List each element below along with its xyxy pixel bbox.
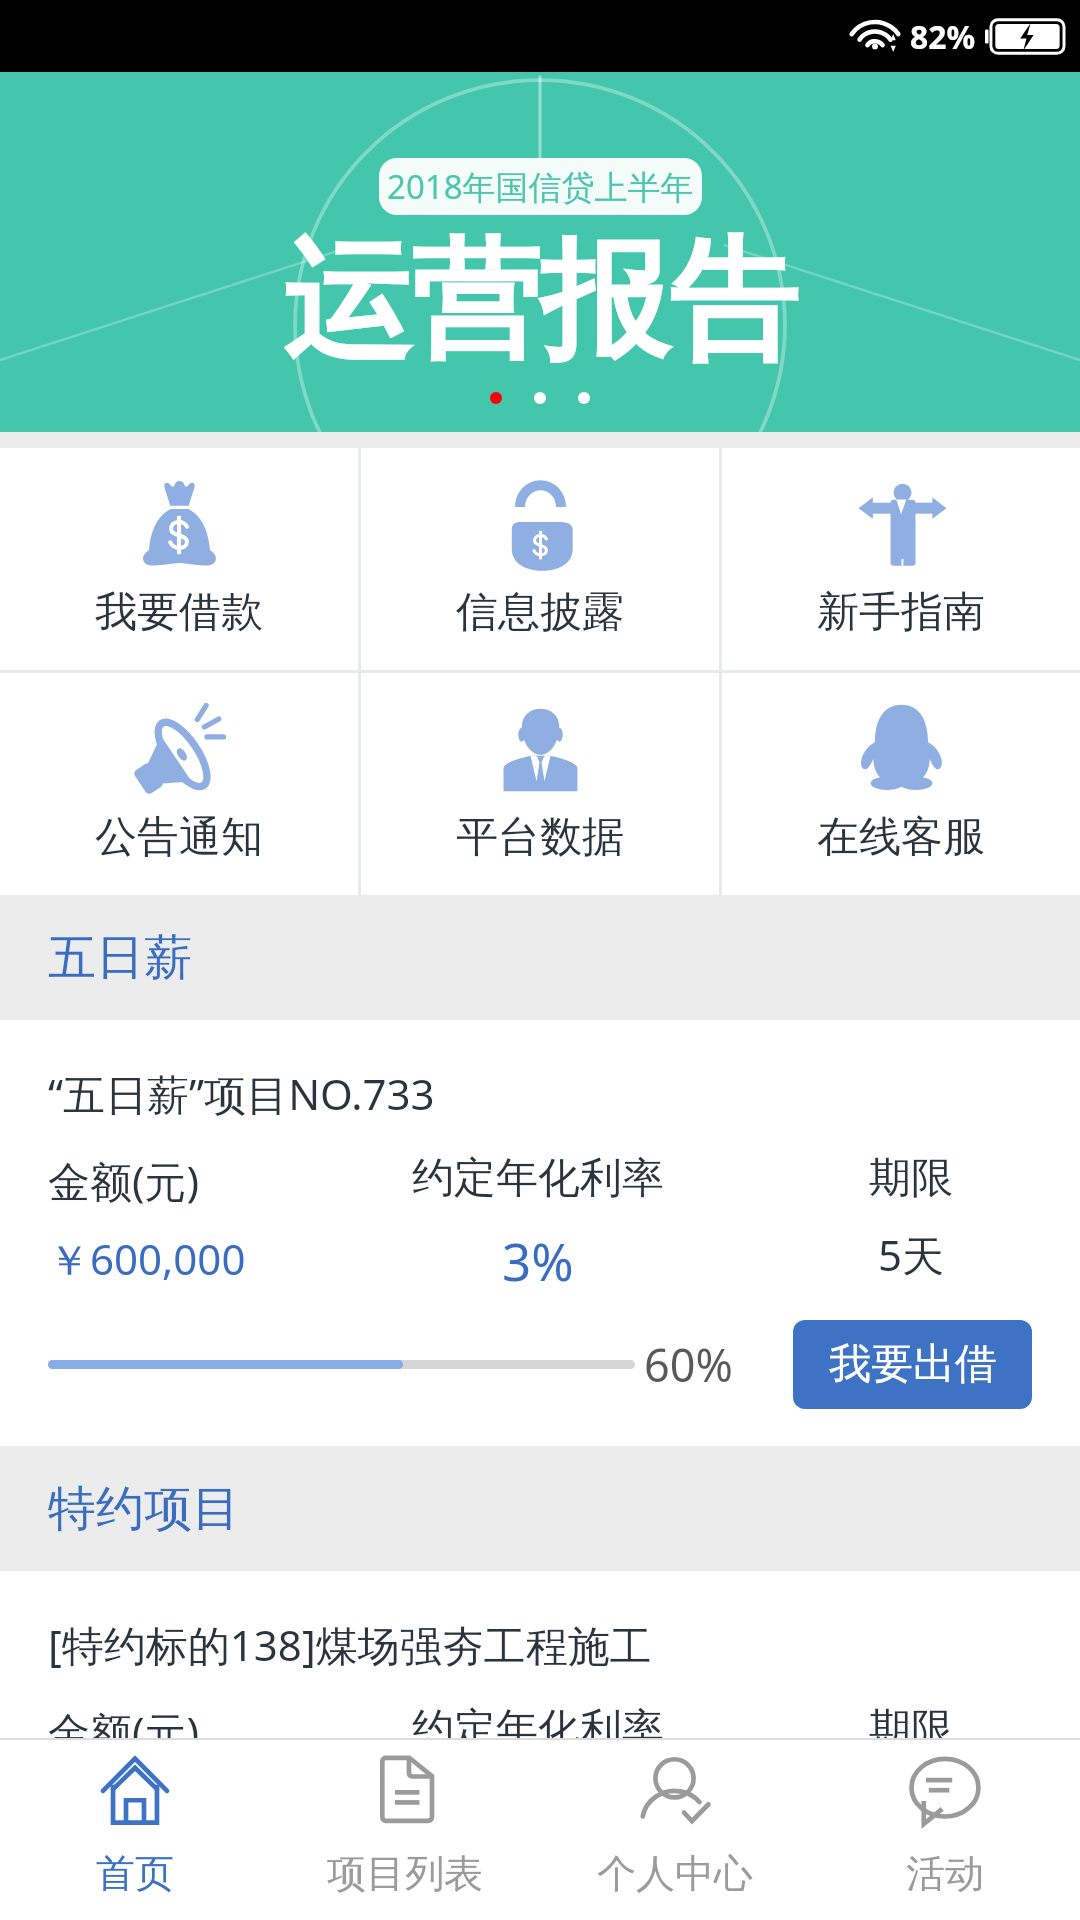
staticText: 项目列表 [327, 1849, 483, 1898]
staticText: 特约项目 [48, 1479, 240, 1539]
button[interactable]: 项目列表 [270, 1740, 540, 1920]
button[interactable]: 信息披露 [361, 448, 719, 670]
staticText: 在线客服 [817, 811, 985, 864]
button[interactable]: 首页 [0, 1740, 270, 1920]
staticText: 活动 [906, 1849, 984, 1898]
button[interactable]: 我要出借 [793, 1870, 1032, 1920]
staticText: 期限 [869, 1703, 953, 1756]
staticText: 信息披露 [456, 586, 624, 639]
staticText: 60% [644, 1334, 733, 1395]
staticText: 公告通知 [95, 811, 263, 864]
staticText: 30天 [866, 1777, 957, 1834]
button[interactable]: 我要借款 [0, 448, 358, 670]
staticText: 五日薪 [48, 928, 192, 988]
staticText: 新手指南 [817, 586, 985, 639]
staticText: ￥300,000 [48, 1781, 246, 1838]
staticText: 平台数据 [456, 811, 624, 864]
button[interactable]: 在线客服 [722, 673, 1080, 895]
staticText: 40% [644, 1870, 733, 1920]
staticText: 3% [502, 1226, 574, 1295]
button[interactable]: 平台数据 [361, 673, 719, 895]
staticText: 我要出借 [829, 1870, 997, 1920]
button[interactable]: 公告通知 [0, 673, 358, 895]
staticText: 我要借款 [95, 586, 263, 639]
button[interactable]: 特约项目 [0, 1446, 1080, 1571]
staticText: ￥600,000 [48, 1230, 246, 1287]
button[interactable]: “五日薪”项目NO.733 [0, 1020, 1080, 1446]
button[interactable]: 个人中心 [540, 1740, 810, 1920]
button[interactable]: 2018年国信贷上半年运营报告 banner [0, 72, 1080, 432]
staticText: 金额(元) [48, 1703, 200, 1760]
staticText: 期限 [869, 1152, 953, 1205]
staticText: 5天 [878, 1226, 945, 1283]
button[interactable]: [特约标的138]煤场强夯工程施工 [0, 1571, 1080, 1920]
staticText: [特约标的138]煤场强夯工程施工 [48, 1616, 652, 1673]
staticText: 82% [910, 15, 976, 58]
staticText: “五日薪”项目NO.733 [48, 1065, 435, 1122]
staticText: 运营报告 [282, 221, 798, 384]
staticText: 约定年化利率 [412, 1152, 664, 1205]
staticText: 金额(元) [48, 1152, 200, 1209]
button[interactable]: 活动 [810, 1740, 1080, 1920]
button[interactable]: 五日薪 [0, 895, 1080, 1020]
staticText: 首页 [96, 1849, 174, 1898]
staticText: 我要出借 [829, 1338, 997, 1391]
staticText: 约定年化利率 [412, 1703, 664, 1756]
staticText: 个人中心 [597, 1849, 753, 1898]
button[interactable]: 新手指南 [722, 448, 1080, 670]
button[interactable]: 我要出借 [793, 1320, 1032, 1409]
staticText: 2018年国信贷上半年 [387, 164, 694, 209]
